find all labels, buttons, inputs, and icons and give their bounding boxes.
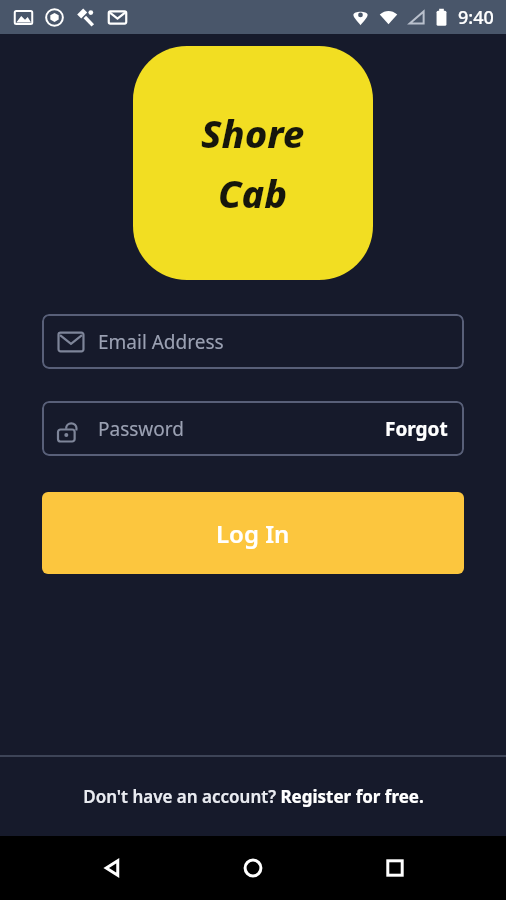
- other: Password: [58, 416, 84, 442]
- button[interactable]: Home: [223, 838, 283, 898]
- staticText: 9:40: [458, 5, 494, 30]
- staticText: Shore: [201, 107, 305, 159]
- button[interactable]: Recents: [365, 838, 425, 898]
- staticText: Cab: [218, 167, 288, 219]
- staticText: Email Address: [98, 329, 224, 355]
- staticText: Forgot: [385, 416, 448, 442]
- staticText: Log In: [216, 517, 290, 550]
- button[interactable]: Log In: [42, 492, 464, 574]
- other: Email: [58, 329, 84, 355]
- button[interactable]: Email: [42, 314, 464, 369]
- button[interactable]: Back: [82, 838, 142, 898]
- button[interactable]: Password: [42, 401, 464, 456]
- staticText: Password: [98, 416, 184, 442]
- button[interactable]: Don't have an account? Register for free…: [0, 757, 506, 836]
- staticText: Don't have an account? Register for free…: [83, 785, 424, 808]
